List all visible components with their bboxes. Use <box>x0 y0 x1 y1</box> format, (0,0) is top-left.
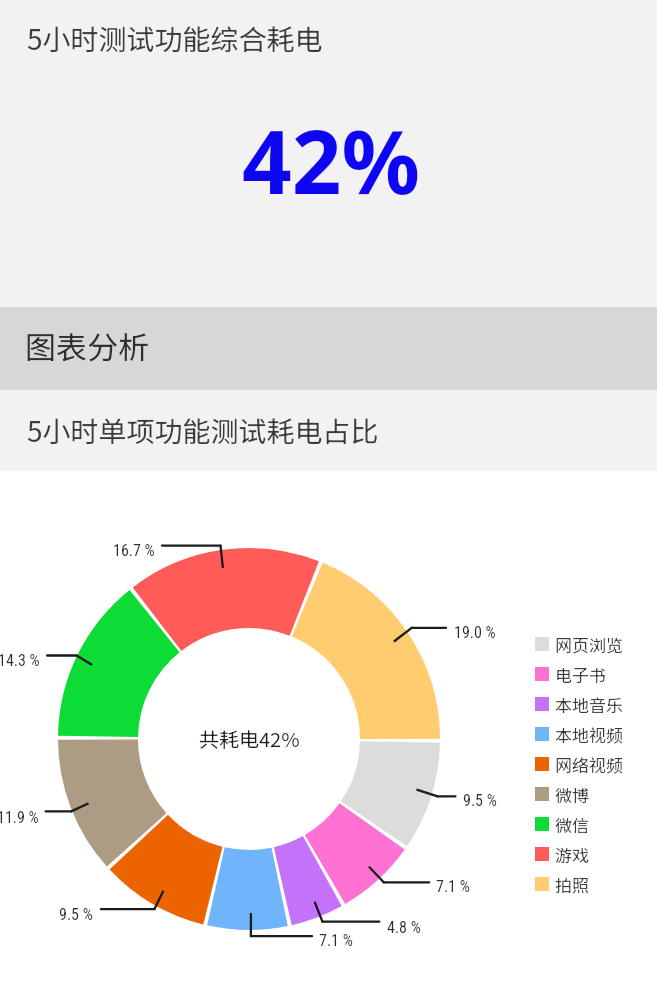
staticText: 电子书 <box>555 662 606 687</box>
staticText: 9.5 % <box>59 905 93 924</box>
staticText: 19.0 % <box>454 623 496 642</box>
button[interactable]: 网页浏览 <box>535 629 623 659</box>
staticText: 拍照 <box>555 872 589 897</box>
button[interactable]: 本地视频 <box>535 719 623 749</box>
button[interactable]: 网络视频 <box>535 749 623 779</box>
button[interactable]: 本地音乐 <box>535 689 623 719</box>
staticText: 5小时单项功能测试耗电占比 <box>27 410 379 451</box>
staticText: 14.3 % <box>0 651 40 670</box>
staticText: 微信 <box>555 812 589 837</box>
button[interactable]: 微信 <box>535 809 589 839</box>
staticText: 本地视频 <box>555 722 623 747</box>
staticText: 42% <box>242 101 421 219</box>
staticText: 16.7 % <box>113 541 155 560</box>
staticText: 微博 <box>555 782 589 807</box>
staticText: 共耗电42% <box>199 724 300 753</box>
staticText: 本地音乐 <box>555 692 623 717</box>
staticText: 游戏 <box>555 842 589 867</box>
staticText: 9.5 % <box>463 791 497 810</box>
button[interactable]: 微博 <box>535 779 589 809</box>
staticText: 7.1 % <box>436 877 470 896</box>
staticText: 网页浏览 <box>555 632 623 657</box>
staticText: 5小时测试功能综合耗电 <box>27 18 323 59</box>
staticText: 7.1 % <box>319 931 353 950</box>
staticText: 图表分析 <box>25 323 149 368</box>
button[interactable]: 游戏 <box>535 839 589 869</box>
button[interactable]: 电子书 <box>535 659 606 689</box>
staticText: 4.8 % <box>387 918 421 937</box>
staticText: 网络视频 <box>555 752 623 777</box>
staticText: 11.9 % <box>0 808 39 827</box>
button[interactable]: 拍照 <box>535 869 589 899</box>
